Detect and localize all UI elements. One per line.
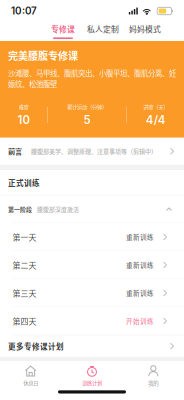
staticText: 妈妈模式 <box>129 23 161 34</box>
staticText: 腰腹部美学、调整原理、注意事项等（剪辑中） <box>31 147 157 156</box>
staticText: 我的 <box>148 379 158 387</box>
staticText: 第四天 <box>12 315 36 327</box>
staticText: 第一天 <box>12 231 36 243</box>
staticText: 重新训练 <box>126 232 154 242</box>
staticText: 专修课 <box>51 23 75 34</box>
staticText: 进度（天） <box>143 103 168 111</box>
staticText: 开始训练 <box>126 316 154 326</box>
button[interactable]: 第一阶段 <box>0 196 184 223</box>
button[interactable]: 第二天 <box>0 251 184 279</box>
staticText: 5 <box>83 113 90 127</box>
button[interactable]: 妈妈模式 <box>129 22 161 41</box>
staticText: 正式训练 <box>8 177 40 188</box>
button[interactable]: 我的 <box>123 363 184 389</box>
staticText: 难度 <box>18 103 28 111</box>
staticText: 私人定制 <box>87 23 119 34</box>
staticText: 累计运动（分钟） <box>67 103 107 111</box>
button[interactable]: 训练计划 <box>61 363 123 389</box>
staticText: 完美腰腹专修课 <box>8 48 78 63</box>
staticText: 第三天 <box>12 287 36 299</box>
staticText: 重新训练 <box>126 260 154 270</box>
button[interactable]: 前言 <box>0 138 184 165</box>
staticText: 沙滩腰、马甲线、腹肌突出、小腹平坦、腹肌分离、妊娠纹、松弛腹壁 <box>8 68 176 89</box>
button[interactable]: 私人定制 <box>87 22 119 41</box>
staticText: 腰腹部深度激活 <box>37 205 79 213</box>
button[interactable]: 第一天 <box>0 223 184 251</box>
button[interactable]: 更多专修课计划 <box>0 335 184 357</box>
staticText: 训练计划 <box>82 379 102 387</box>
staticText: 重新训练 <box>126 288 154 298</box>
button[interactable]: 休息日 <box>0 363 61 389</box>
button[interactable]: 专修课 <box>51 22 75 41</box>
staticText: 更多专修课计划 <box>8 341 64 352</box>
staticText: 10 <box>17 113 29 127</box>
staticText: 第二天 <box>12 259 36 271</box>
staticText: 4/4 <box>146 113 166 127</box>
staticText: 10:07 <box>11 5 37 17</box>
staticText: 休息日 <box>23 379 38 387</box>
staticText: 前言 <box>8 146 22 156</box>
button[interactable]: 第四天 <box>0 307 184 335</box>
staticText: 第一阶段 <box>8 205 32 214</box>
button[interactable]: 第三天 <box>0 279 184 307</box>
